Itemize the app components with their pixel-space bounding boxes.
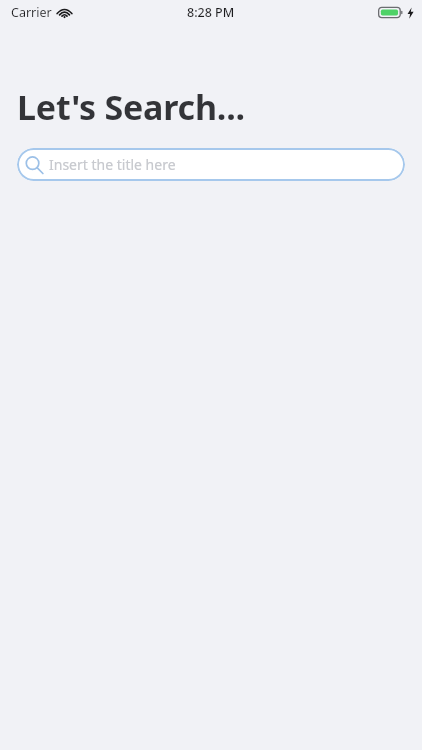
staticText: Let's Search... bbox=[17, 84, 245, 130]
button[interactable]: Search bbox=[17, 148, 405, 181]
other: Search bbox=[24, 155, 43, 174]
staticText: Insert the title here bbox=[49, 155, 176, 174]
staticText: 8:28 PM bbox=[187, 4, 235, 21]
staticText: Carrier bbox=[11, 4, 52, 21]
